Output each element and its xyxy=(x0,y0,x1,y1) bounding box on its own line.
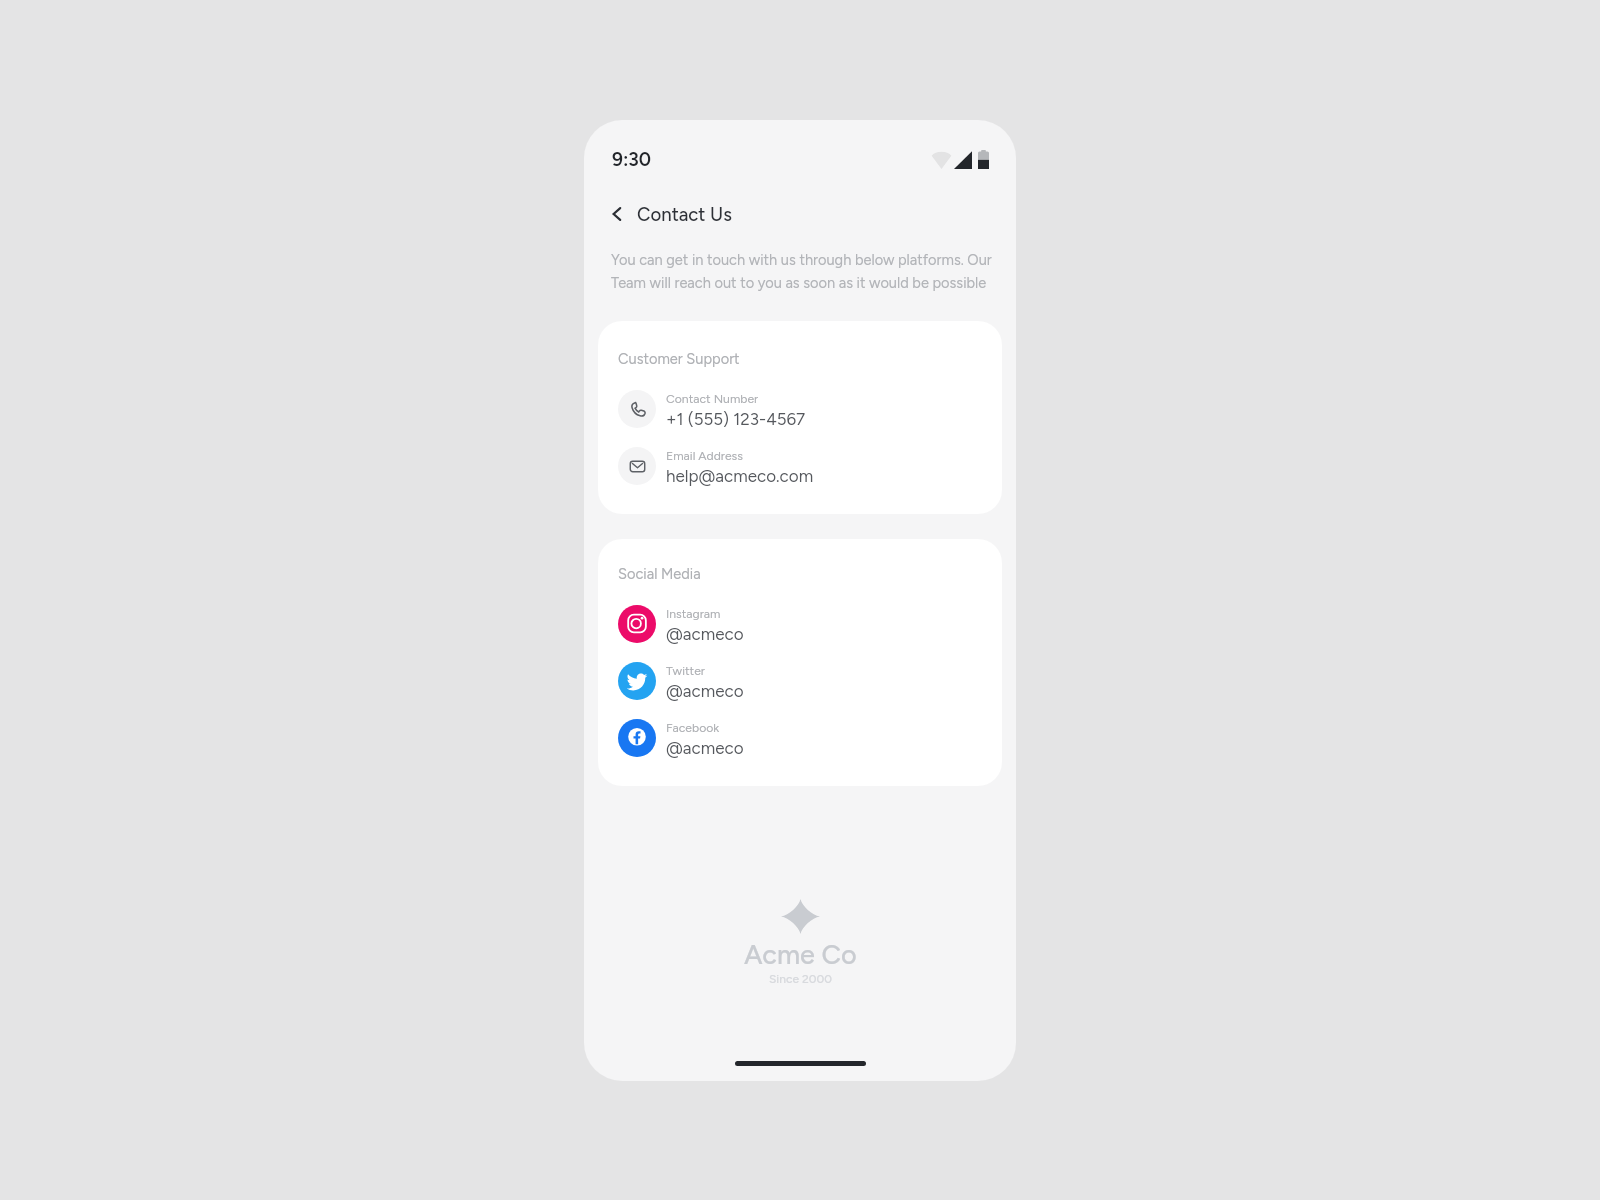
staticText: help@acmeco.com xyxy=(666,465,814,487)
staticText: You can get in touch with us through bel… xyxy=(611,247,994,293)
staticText: Facebook xyxy=(666,720,720,735)
staticText: 9:30 xyxy=(612,148,652,171)
staticText: @acmeco xyxy=(666,680,744,702)
staticText: Contact Number xyxy=(666,391,759,406)
staticText: +1 (555) 123-4567 xyxy=(666,408,806,430)
staticText: Acme Co xyxy=(744,938,857,970)
button[interactable]: Facebook xyxy=(618,719,1002,757)
button[interactable]: Email Address xyxy=(618,447,1002,485)
staticText: Social Media xyxy=(618,565,701,583)
staticText: Customer Support xyxy=(618,350,740,368)
staticText: @acmeco xyxy=(666,737,744,759)
button[interactable]: Twitter xyxy=(618,662,1002,700)
staticText: Contact Us xyxy=(637,203,732,225)
button[interactable]: Contact Number xyxy=(618,390,1002,428)
staticText: @acmeco xyxy=(666,623,744,645)
staticText: Instagram xyxy=(666,606,721,621)
staticText: Since 2000 xyxy=(769,972,832,986)
button[interactable]: Back xyxy=(603,200,631,228)
button[interactable]: Instagram xyxy=(618,605,1002,643)
staticText: Email Address xyxy=(666,448,743,463)
staticText: Twitter xyxy=(666,663,705,678)
